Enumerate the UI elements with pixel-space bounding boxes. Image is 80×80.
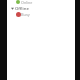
button[interactable]: Online <box>7 0 75 5</box>
staticText: Offline <box>15 5 29 11</box>
button[interactable]: Busy <box>7 11 75 17</box>
button[interactable]: Expand <box>7 5 75 11</box>
staticText: Busy <box>21 12 30 17</box>
staticText: Online <box>21 0 33 5</box>
other: Expand <box>11 7 14 10</box>
